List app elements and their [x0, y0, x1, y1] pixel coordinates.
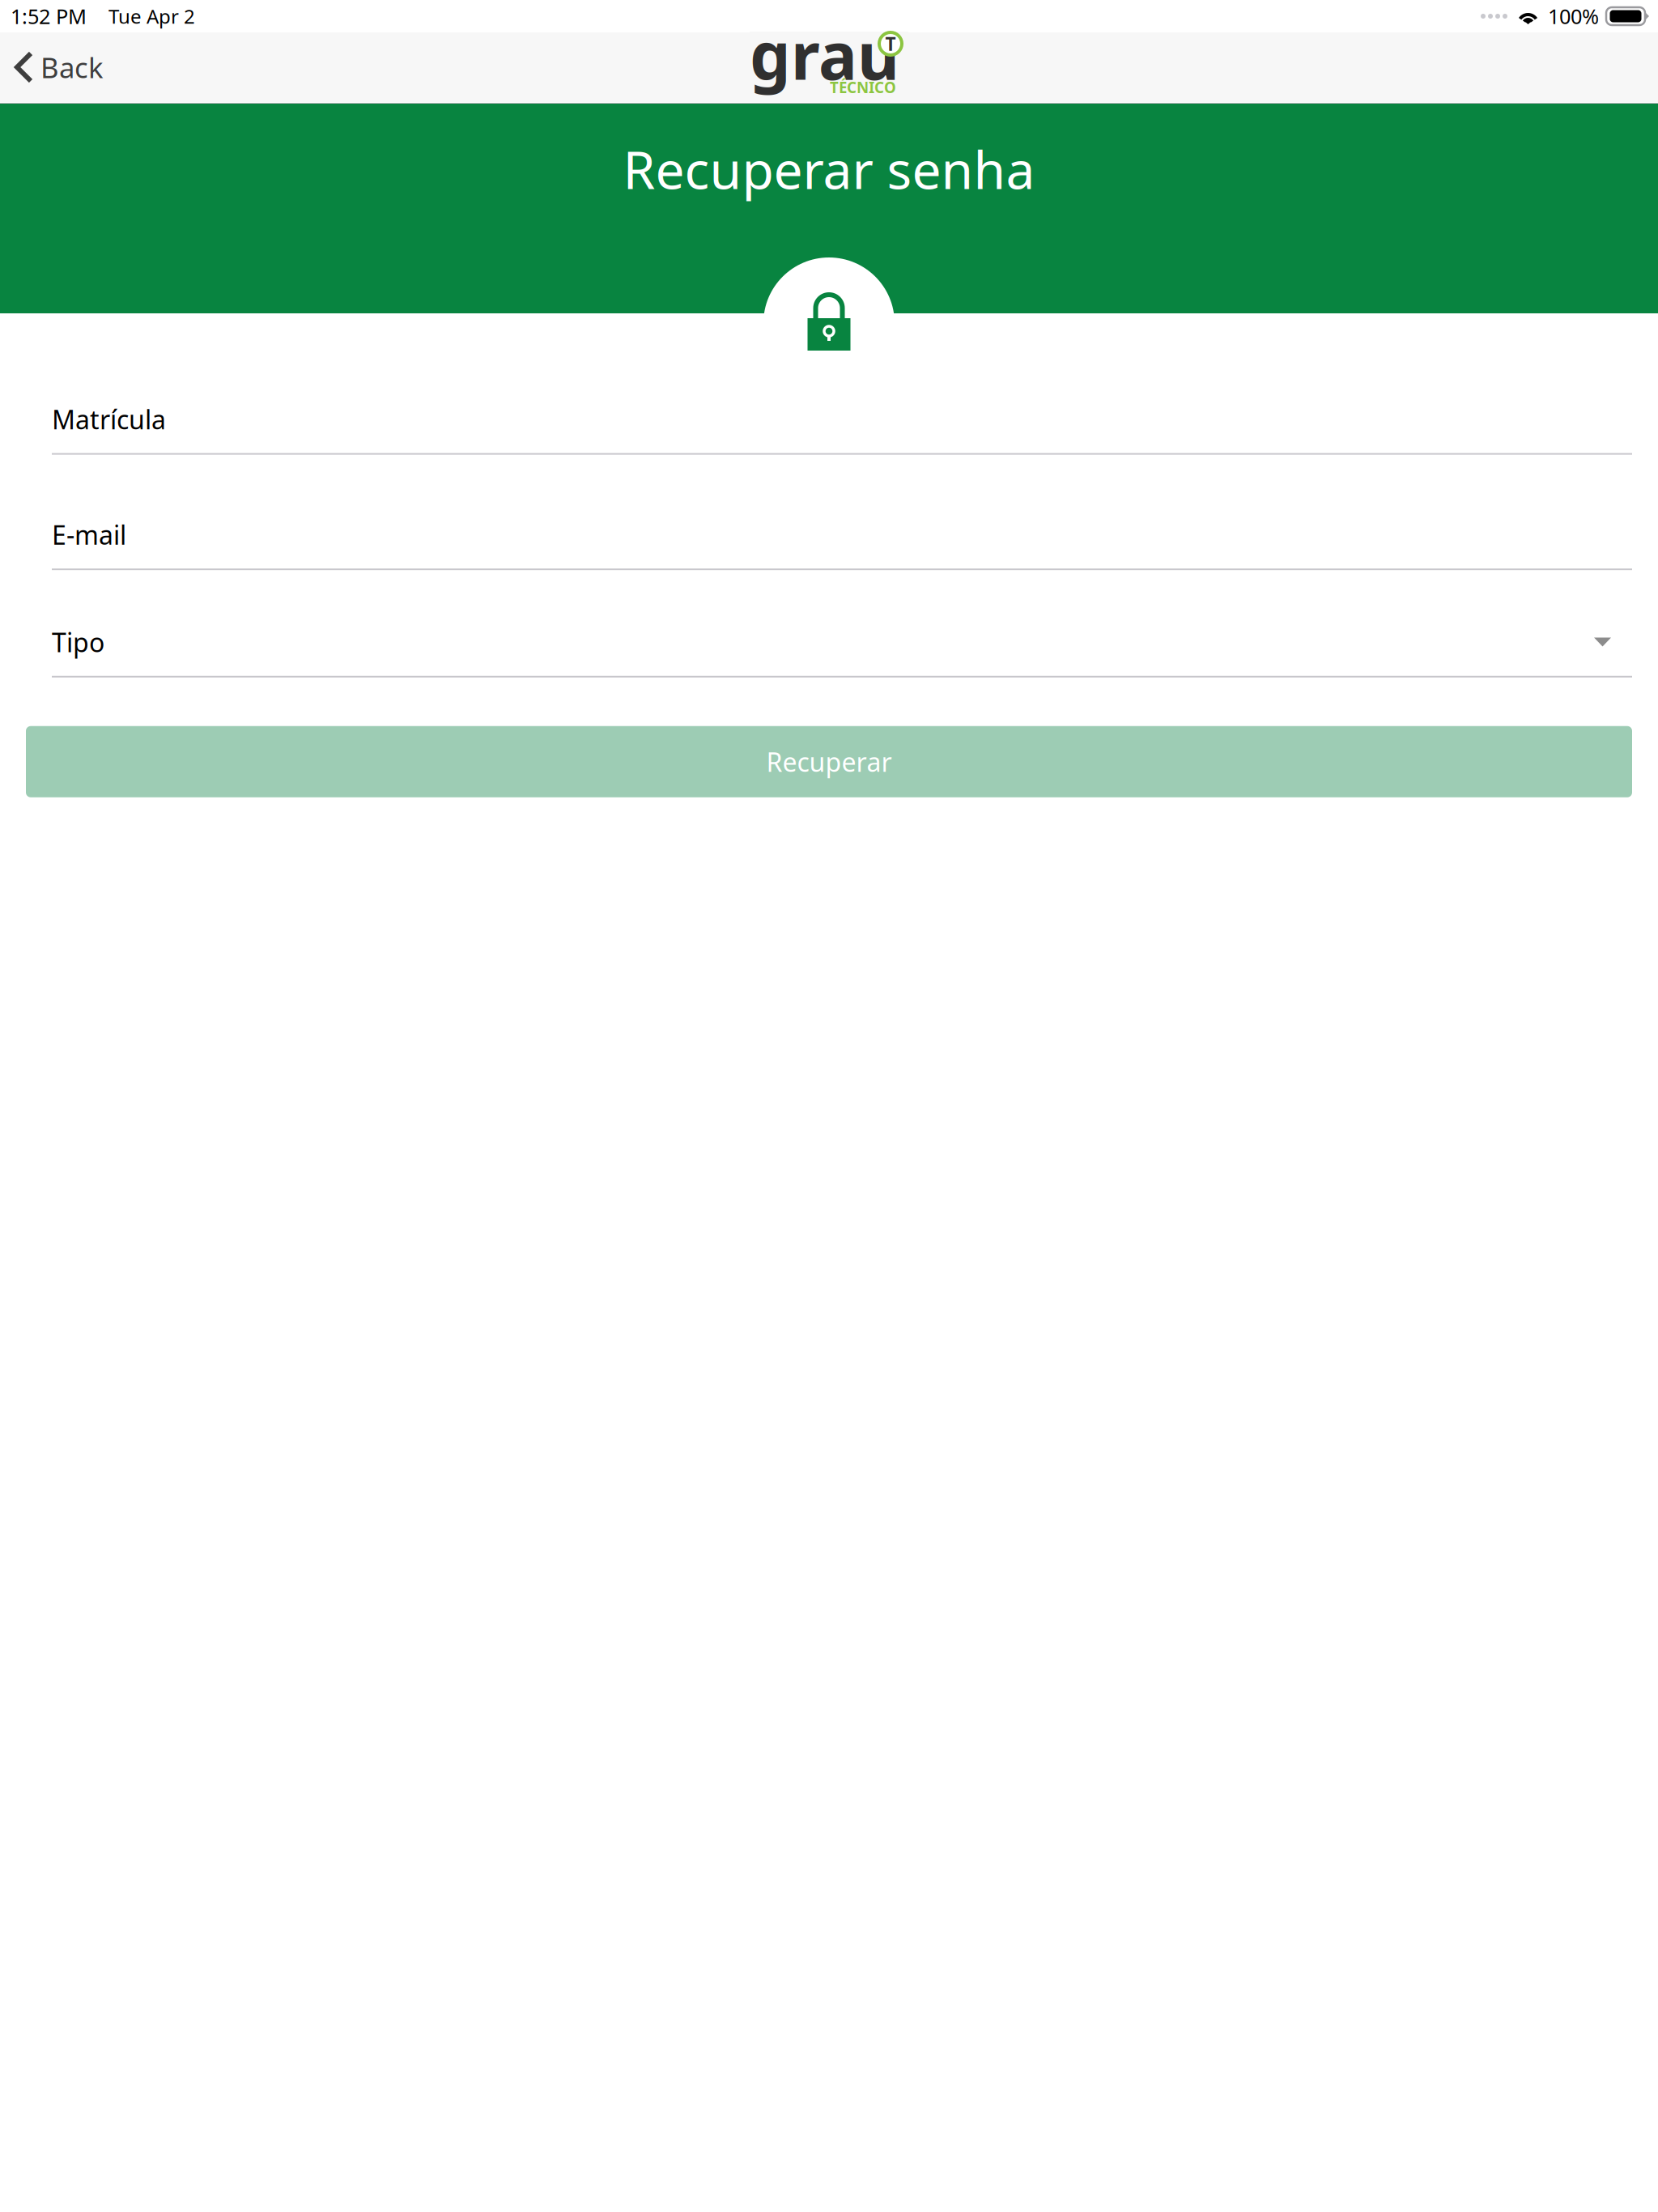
staticText: Tipo	[52, 624, 104, 660]
staticText: E-mail	[52, 517, 126, 552]
staticText: Tue Apr 2	[108, 3, 195, 29]
staticText: T	[885, 31, 896, 56]
staticText: Matrícula	[52, 402, 166, 437]
staticText: 1:52 PM	[11, 2, 87, 30]
staticText: TÉCNICO	[830, 77, 896, 97]
staticText: Recuperar	[766, 744, 892, 779]
button[interactable]: Back	[0, 32, 123, 102]
staticText: 100%	[1548, 2, 1599, 30]
staticText: Recuperar senha	[623, 134, 1035, 204]
staticText: Back	[40, 48, 104, 86]
button[interactable]: Recuperar	[26, 726, 1632, 797]
staticText: grau	[750, 11, 899, 99]
